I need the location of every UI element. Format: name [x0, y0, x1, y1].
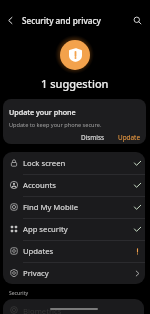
staticText: Find My Mobile	[23, 202, 78, 212]
staticText: App security	[23, 224, 68, 234]
button[interactable]: Update your phone	[3, 99, 146, 144]
button[interactable]: App security	[3, 218, 145, 240]
button[interactable]: Biometrics	[3, 299, 144, 314]
button[interactable]: Lock screen	[3, 152, 145, 174]
button[interactable]: Updates	[3, 240, 145, 262]
button[interactable]: Update	[114, 131, 145, 144]
button[interactable]: Find My Mobile	[3, 196, 145, 218]
button[interactable]: Back	[3, 13, 18, 28]
staticText: 1 suggestion	[41, 76, 109, 91]
staticText: Biometrics	[23, 306, 62, 314]
staticText: Security and privacy	[22, 15, 101, 26]
staticText: Update to keep your phone secure.	[9, 121, 102, 129]
staticText: Dismiss	[81, 133, 105, 142]
staticText: Privacy	[23, 268, 49, 278]
staticText: Update	[118, 133, 141, 142]
button[interactable]: Dismiss	[77, 131, 109, 144]
button[interactable]: Search	[129, 12, 145, 28]
staticText: Accounts	[23, 180, 56, 190]
staticText: Update your phone	[9, 107, 76, 117]
staticText: Updates	[23, 246, 54, 256]
staticText: Security	[9, 290, 29, 297]
staticText: Lock screen	[23, 158, 66, 168]
button[interactable]: Privacy	[3, 262, 145, 284]
button[interactable]: Accounts	[3, 174, 145, 196]
